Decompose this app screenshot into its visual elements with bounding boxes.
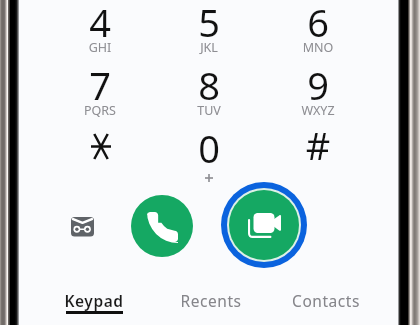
staticText: TUV — [173, 102, 245, 119]
staticText: Keypad — [36, 290, 152, 311]
staticText: GHI — [64, 39, 136, 56]
staticText: 8 — [173, 59, 245, 111]
button[interactable]: Keypad — [36, 287, 152, 325]
button[interactable]: 9 — [282, 61, 354, 123]
button[interactable]: 0 — [173, 124, 245, 186]
button[interactable]: Call — [131, 195, 193, 257]
button[interactable]: # — [282, 124, 354, 186]
staticText: MNO — [282, 39, 354, 56]
staticText: PQRS — [64, 102, 136, 119]
button[interactable]: 5 — [173, 0, 245, 60]
staticText: JKL — [173, 39, 245, 56]
staticText: 7 — [64, 59, 136, 111]
button[interactable]: Voicemail — [58, 203, 106, 251]
staticText: Contacts — [268, 290, 384, 311]
button[interactable]: 6 — [282, 0, 354, 60]
staticText: 5 — [173, 0, 245, 48]
staticText: 4 — [64, 0, 136, 48]
button[interactable]: Video call — [221, 182, 307, 268]
staticText: 6 — [282, 0, 354, 48]
button[interactable] — [64, 124, 136, 186]
button[interactable]: 4 — [64, 0, 136, 60]
button[interactable]: 8 — [173, 61, 245, 123]
staticText: Recents — [153, 290, 269, 311]
staticText: 9 — [282, 59, 354, 111]
staticText: 0 — [173, 122, 245, 174]
button[interactable]: Recents — [153, 287, 269, 325]
staticText: WXYZ — [282, 102, 354, 119]
button[interactable]: Contacts — [268, 287, 384, 325]
staticText: # — [282, 119, 354, 171]
button[interactable]: 7 — [64, 61, 136, 123]
